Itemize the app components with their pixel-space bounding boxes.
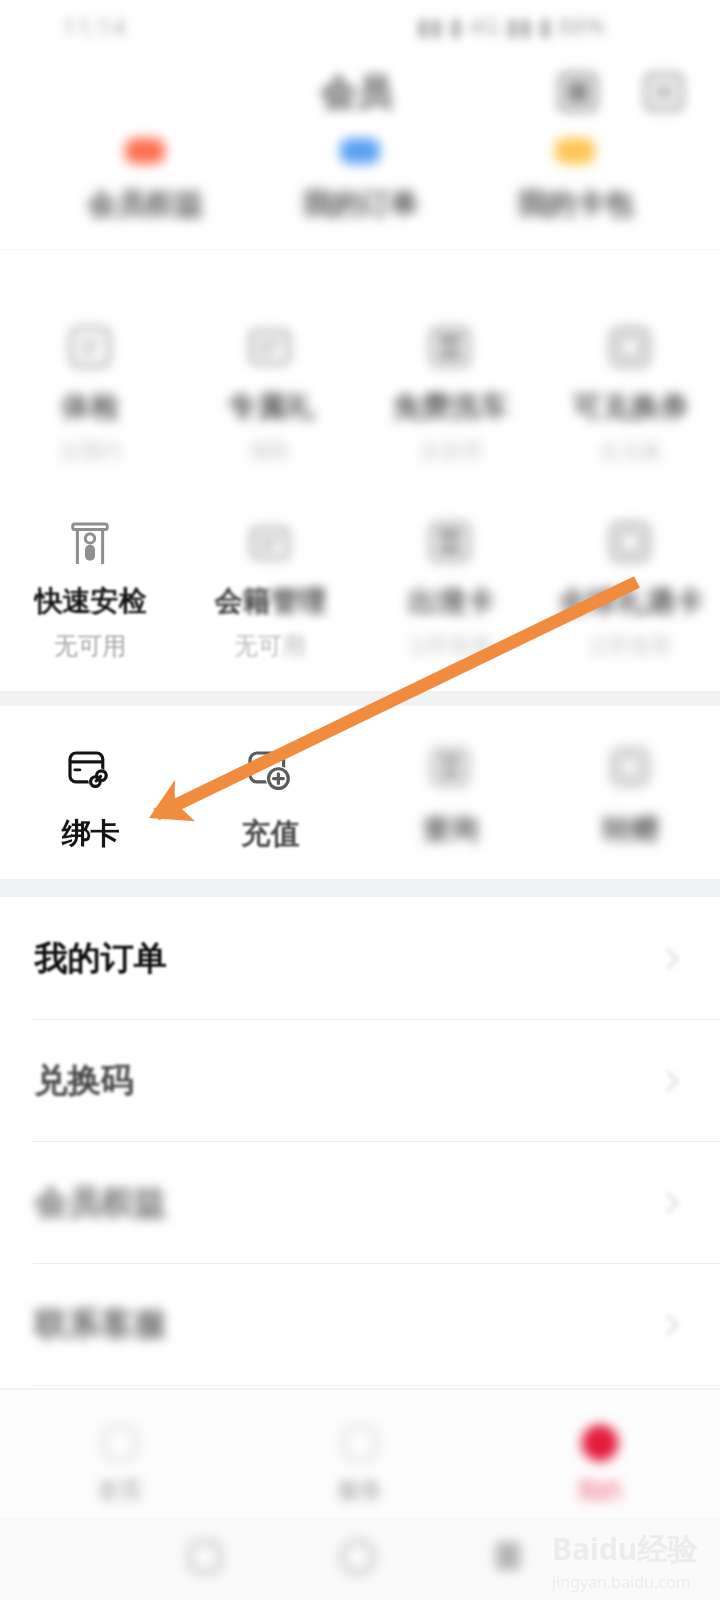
- button[interactable]: 会员权益: [0, 1142, 720, 1264]
- staticText: 免费洗车: [392, 389, 508, 426]
- staticText: 无可用: [54, 631, 126, 661]
- button[interactable]: 体检: [0, 305, 180, 475]
- staticText: 领取: [249, 438, 291, 464]
- button[interactable]: 可兑换券: [540, 305, 720, 475]
- button[interactable]: 会: [180, 500, 360, 675]
- button[interactable]: 查询: [360, 710, 540, 878]
- staticText: 我的: [577, 1476, 623, 1505]
- button[interactable]: 我的卡包: [467, 120, 682, 248]
- button[interactable]: Recent apps: [488, 1536, 528, 1576]
- staticText: 我的订单: [34, 938, 166, 980]
- button[interactable]: 我的: [480, 1390, 720, 1518]
- staticText: 用: [282, 631, 306, 661]
- staticText: 籍: [242, 584, 270, 619]
- button[interactable]: 兑换码: [0, 1020, 720, 1142]
- staticText: Baidu经验: [552, 1528, 698, 1569]
- staticText: 去使用: [419, 438, 482, 464]
- button[interactable]: Back: [184, 1536, 226, 1578]
- staticText: 查询: [422, 812, 478, 847]
- staticText: 我的订单: [302, 186, 418, 223]
- button[interactable]: Customer service: [644, 72, 684, 112]
- button[interactable]: 全球礼遇卡: [540, 500, 720, 675]
- button[interactable]: 服务: [240, 1390, 480, 1518]
- staticText: 会: [214, 584, 242, 619]
- staticText: 绑卡: [61, 816, 119, 853]
- staticText: 充值: [241, 816, 299, 853]
- staticText: 无可: [234, 631, 282, 661]
- button[interactable]: 充值: [180, 710, 360, 878]
- staticText: 我的卡包: [517, 186, 633, 223]
- button[interactable]: 转赠: [540, 710, 720, 878]
- button[interactable]: Scan code: [558, 72, 598, 112]
- button[interactable]: 专属礼: [180, 305, 360, 475]
- staticText: 快速安检: [34, 584, 146, 619]
- staticText: ▮▮ ▮ 4G ▮▮ ▮ 88%: [416, 9, 606, 42]
- button[interactable]: 首页: [0, 1390, 240, 1518]
- staticText: 专属礼: [227, 389, 314, 426]
- button[interactable]: 出境卡: [360, 500, 540, 675]
- button[interactable]: 免费洗车: [360, 305, 540, 475]
- button[interactable]: Home: [337, 1536, 379, 1578]
- staticText: 全球礼遇卡: [558, 584, 703, 621]
- staticText: 首页: [97, 1476, 143, 1505]
- staticText: 体检: [61, 389, 119, 426]
- staticText: 出境卡: [407, 584, 494, 621]
- staticText: 转赠: [602, 812, 658, 847]
- staticText: 兑换码: [34, 1060, 133, 1102]
- button[interactable]: 我的订单: [252, 120, 467, 248]
- button[interactable]: 联系客服: [0, 1264, 720, 1386]
- staticText: 管理: [270, 584, 326, 619]
- staticText: 会员权益: [87, 186, 203, 223]
- button[interactable]: 会员: [320, 70, 392, 115]
- staticText: 服务: [337, 1476, 383, 1505]
- staticText: 去预约: [59, 438, 122, 464]
- button[interactable]: 会员权益: [37, 120, 252, 248]
- staticText: 联系客服: [34, 1304, 166, 1346]
- staticText: 立即查看: [408, 633, 492, 659]
- staticText: 立即查看: [588, 633, 672, 659]
- staticText: 11:14: [62, 9, 126, 43]
- staticText: jingyan.baidu.com: [552, 1571, 691, 1593]
- button[interactable]: 绑卡: [0, 710, 180, 878]
- staticText: 可兑换券: [572, 389, 688, 426]
- button[interactable]: 我的订单: [0, 898, 720, 1020]
- staticText: 去兑换: [599, 438, 662, 464]
- staticText: 会员权益: [34, 1182, 166, 1224]
- button[interactable]: 快速安检: [0, 500, 180, 675]
